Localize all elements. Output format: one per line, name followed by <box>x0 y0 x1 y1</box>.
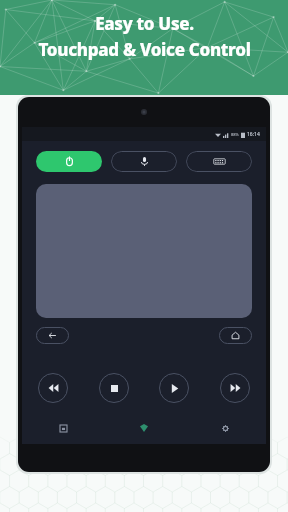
button[interactable]: Remote <box>133 417 155 439</box>
staticText: 88% <box>231 132 239 137</box>
button[interactable]: Input mode <box>186 151 252 172</box>
button[interactable]: Back <box>36 327 69 344</box>
button[interactable]: Touchpad area <box>36 184 252 318</box>
button[interactable]: Stop <box>99 373 129 403</box>
button[interactable]: Input mode <box>111 151 177 172</box>
staticText: Touchpad & Voice Control <box>38 38 251 61</box>
button[interactable]: Recents <box>52 417 74 439</box>
button[interactable]: Touchpad mode <box>36 151 102 172</box>
button[interactable]: Fast forward <box>220 373 250 403</box>
button[interactable]: Play <box>159 373 189 403</box>
button[interactable]: Settings <box>214 417 236 439</box>
staticText: Easy to Use. <box>95 12 194 35</box>
button[interactable]: Home <box>219 327 252 344</box>
staticText: 16:14 <box>247 131 260 138</box>
button[interactable]: Rewind <box>38 373 68 403</box>
